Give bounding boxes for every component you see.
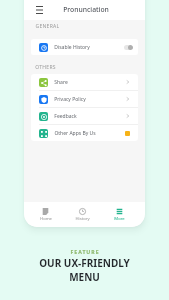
staticText: Share [54, 79, 68, 86]
staticText: MENU [69, 270, 100, 284]
staticText: Disable History [54, 44, 90, 51]
button[interactable]: History [64, 202, 101, 227]
staticText: Other Apps By Us [54, 130, 96, 137]
button[interactable]: Home [27, 202, 64, 227]
staticText: OTHERS [35, 64, 56, 71]
staticText: FEATURE [70, 248, 100, 255]
staticText: Privacy Policy [54, 96, 86, 103]
button[interactable]: Feedback [31, 108, 138, 124]
staticText: More [114, 216, 125, 222]
button[interactable]: Menu [33, 3, 45, 15]
staticText: Home [40, 216, 52, 222]
button[interactable]: Disable History [31, 39, 138, 55]
staticText: Pronunciation [63, 5, 109, 14]
button[interactable]: Other Apps By Us [31, 125, 138, 141]
staticText: History [75, 216, 90, 222]
button[interactable]: More [101, 202, 138, 227]
button[interactable]: Privacy Policy [31, 91, 138, 107]
staticText: Feedback [54, 113, 77, 120]
staticText: OUR UX-FRIENDLY [39, 256, 130, 270]
staticText: GENERAL [35, 23, 60, 30]
button[interactable]: Share [31, 74, 138, 90]
